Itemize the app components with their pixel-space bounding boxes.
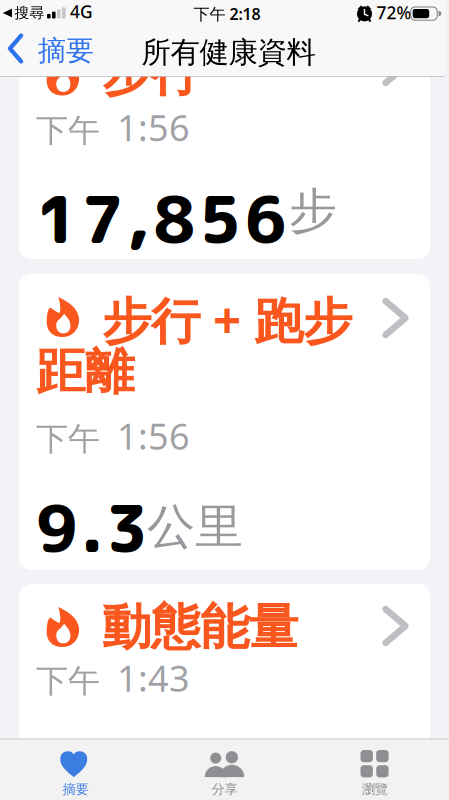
staticText: 4G: [70, 0, 93, 23]
button[interactable]: 分享: [150, 739, 299, 800]
staticText: 搜尋: [14, 4, 44, 22]
staticText: 距離: [36, 341, 134, 402]
staticText: 下午: [36, 420, 100, 459]
staticText: 分享: [211, 781, 237, 797]
staticText: 17,856: [36, 200, 287, 243]
button[interactable]: 瀏覽: [299, 739, 449, 800]
staticText: 動態能量: [102, 597, 298, 658]
button[interactable]: 返回摘要: [0, 0, 108, 70]
staticText: 下午: [36, 662, 100, 701]
button[interactable]: 摘要: [0, 739, 150, 800]
button[interactable]: 動態能量: [19, 584, 430, 800]
staticText: 下午: [36, 111, 100, 150]
staticText: 步: [289, 181, 337, 240]
staticText: 摘要: [62, 781, 88, 797]
staticText: 下午 2:18: [193, 3, 260, 24]
staticText: 步行 + 跑步: [102, 287, 352, 352]
staticText: 步行: [102, 43, 200, 104]
button[interactable]: 步行 + 跑步: [19, 274, 430, 570]
staticText: 所有健康資料: [141, 34, 315, 70]
staticText: 1:56: [117, 412, 190, 460]
staticText: 公里: [147, 497, 243, 556]
button[interactable]: 步行: [19, 15, 430, 259]
staticText: 摘要: [38, 33, 94, 68]
staticText: 72%: [376, 1, 411, 24]
staticText: 9.3: [36, 509, 148, 552]
staticText: 1:43: [117, 654, 190, 702]
staticText: 1:56: [117, 103, 190, 151]
staticText: 瀏覽: [362, 781, 388, 797]
